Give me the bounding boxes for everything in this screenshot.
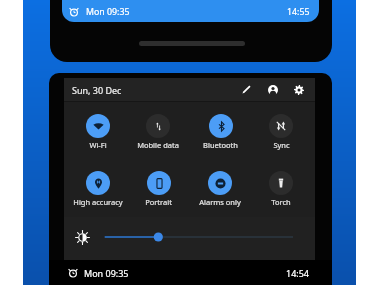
- button[interactable]: User: [264, 81, 281, 98]
- staticText: 14:55: [287, 6, 310, 18]
- button[interactable]: High accuracy: [67, 171, 129, 209]
- staticText: 14:54: [286, 267, 310, 279]
- staticText: Sun, 30 Dec: [72, 84, 122, 96]
- staticText: Alarms only: [199, 197, 241, 207]
- staticText: Torch: [271, 197, 291, 207]
- staticText: High accuracy: [73, 197, 123, 207]
- staticText: Mobile data: [137, 140, 179, 150]
- button[interactable]: Settings: [290, 81, 307, 98]
- button[interactable]: Alarms only: [189, 171, 251, 209]
- button[interactable]: Sync: [250, 114, 312, 152]
- staticText: Wi-Fi: [89, 140, 107, 150]
- button[interactable]: Mobile data: [127, 114, 189, 152]
- staticText: Sync: [273, 140, 290, 150]
- button[interactable]: Wi-Fi: [67, 114, 129, 152]
- staticText: Mon 09:35: [84, 267, 129, 279]
- button[interactable]: Edit: [238, 81, 255, 98]
- staticText: Mon 09:35: [86, 6, 130, 18]
- staticText: Portrait: [145, 197, 172, 207]
- button[interactable]: Bluetooth: [189, 114, 251, 152]
- button[interactable]: Portrait: [127, 171, 189, 209]
- staticText: Bluetooth: [203, 140, 238, 150]
- button[interactable]: Torch: [250, 171, 312, 209]
